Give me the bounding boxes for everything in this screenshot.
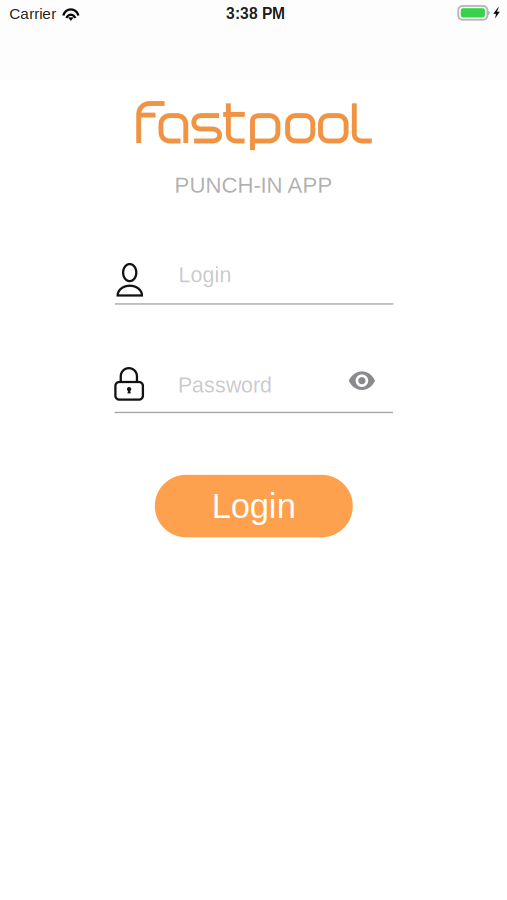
- staticText: Login: [212, 487, 296, 525]
- button[interactable]: Login: [155, 475, 353, 537]
- staticText: Carrier: [9, 5, 56, 22]
- staticText: 3:38 PM: [226, 5, 285, 22]
- staticText: Password: [178, 373, 272, 397]
- staticText: PUNCH-IN APP: [174, 173, 332, 197]
- staticText: Login: [178, 263, 231, 287]
